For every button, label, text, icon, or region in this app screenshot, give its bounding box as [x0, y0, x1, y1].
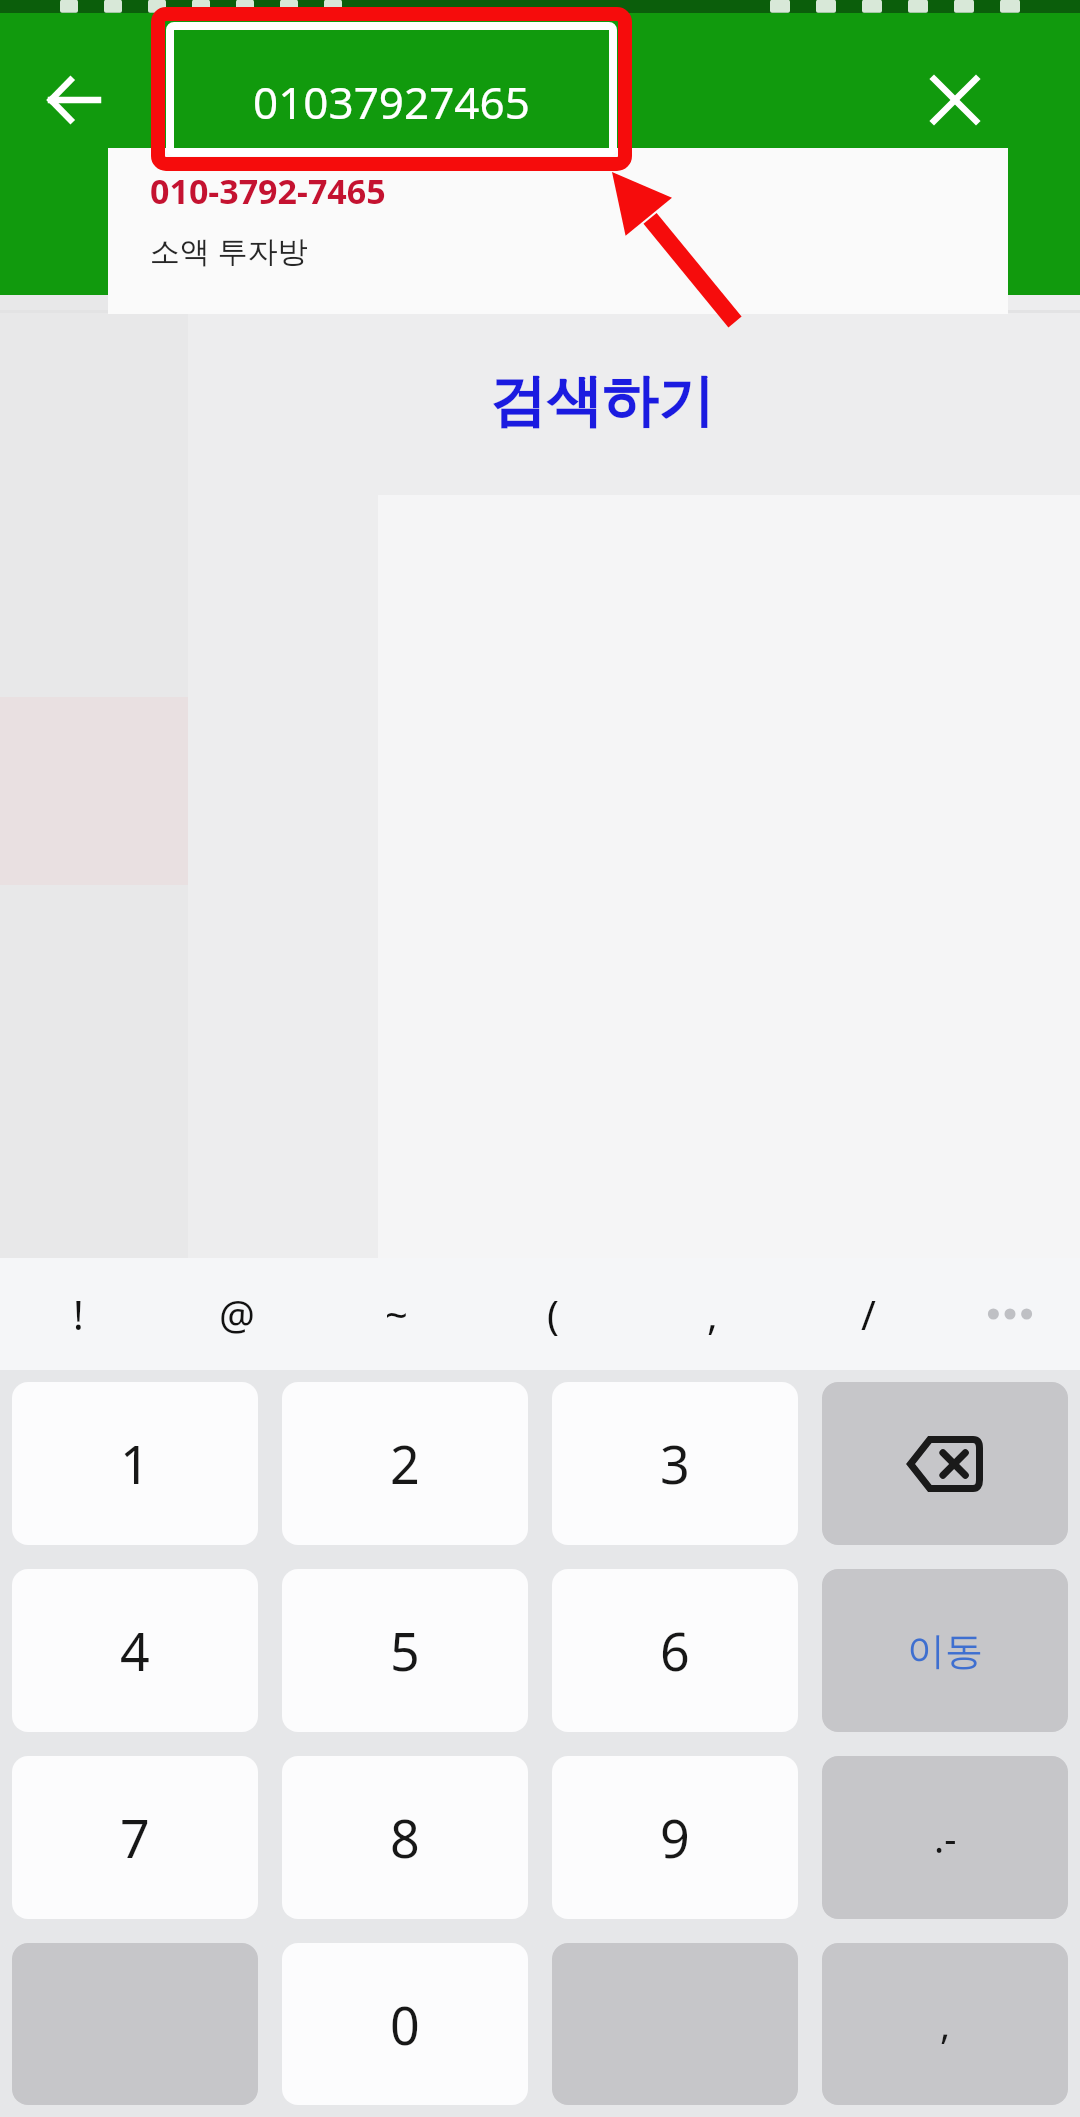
button[interactable]: 0 — [282, 1943, 528, 2105]
button[interactable]: Backspace — [822, 1382, 1068, 1545]
staticText: 6 — [660, 1615, 690, 1686]
staticText: , — [940, 1998, 951, 2050]
button[interactable]: ( — [493, 1258, 613, 1370]
button[interactable]: 8 — [282, 1756, 528, 1919]
button[interactable]: .- — [822, 1756, 1068, 1919]
button[interactable]: 4 — [12, 1569, 258, 1732]
staticText: @ — [219, 1287, 255, 1341]
staticText: 이동 — [907, 1627, 983, 1675]
button[interactable]: 5 — [282, 1569, 528, 1732]
staticText: 8 — [390, 1802, 420, 1873]
button[interactable]: 7 — [12, 1756, 258, 1919]
button[interactable]: Clear — [915, 60, 995, 140]
staticText: 01037927465 — [253, 72, 530, 132]
staticText: 0 — [390, 1989, 420, 2060]
button[interactable]: ~ — [336, 1258, 456, 1370]
staticText: 9 — [660, 1802, 690, 1873]
button[interactable]: , — [822, 1943, 1068, 2105]
button[interactable]: 9 — [552, 1756, 798, 1919]
button[interactable]: 6 — [552, 1569, 798, 1732]
button[interactable]: 1 — [12, 1382, 258, 1545]
staticText: ~ — [385, 1287, 408, 1341]
button[interactable]: 2 — [282, 1382, 528, 1545]
staticText: 2 — [390, 1428, 420, 1499]
staticText: ! — [73, 1287, 84, 1341]
button[interactable]: 3 — [552, 1382, 798, 1545]
staticText: 5 — [390, 1615, 420, 1686]
button[interactable]: @ — [177, 1258, 297, 1370]
staticText: 검색하기 — [490, 366, 714, 437]
staticText: 4 — [120, 1615, 150, 1686]
button[interactable]: Back — [33, 60, 113, 140]
staticText: ( — [547, 1287, 559, 1341]
button[interactable]: ! — [18, 1258, 138, 1370]
button[interactable]: More symbols — [955, 1258, 1065, 1370]
staticText: , — [707, 1287, 718, 1341]
button[interactable]: 010-3792-7465 — [108, 148, 1008, 314]
button[interactable]: 이동 — [822, 1569, 1068, 1732]
staticText: 010-3792-7465 — [150, 168, 386, 214]
staticText: / — [861, 1287, 876, 1341]
button[interactable]: 01037927465 — [158, 27, 625, 177]
button[interactable]: , — [652, 1258, 772, 1370]
staticText: 1 — [120, 1428, 150, 1499]
staticText: 3 — [660, 1428, 690, 1499]
button[interactable]: / — [808, 1258, 928, 1370]
staticText: 소액 투자방 — [150, 230, 308, 271]
staticText: .- — [934, 1812, 957, 1864]
staticText: 7 — [120, 1802, 150, 1873]
